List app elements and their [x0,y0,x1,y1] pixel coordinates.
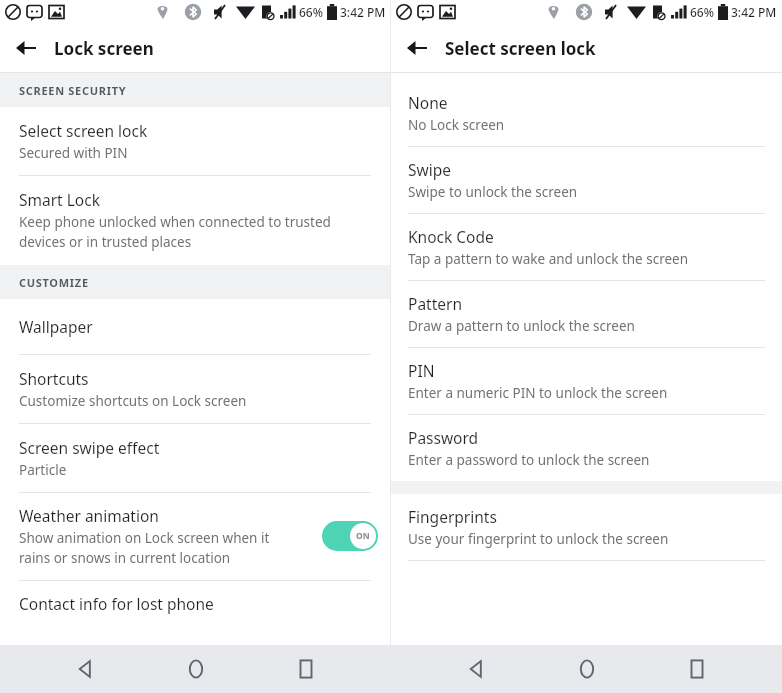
staticText: Select screen lock [19,120,148,141]
button[interactable]: Select screen lock [0,107,390,175]
button[interactable]: Wallpaper [0,299,390,354]
staticText: Password [408,427,479,448]
staticText: Show animation on Lock screen when it ra… [19,529,270,567]
button[interactable]: Contact info for lost phone [0,581,390,631]
button[interactable]: Pattern [391,281,782,347]
staticText: Use your fingerprint to unlock the scree… [408,530,669,548]
staticText: Screen swipe effect [19,437,160,458]
button[interactable]: Password [391,415,782,481]
button[interactable]: Back [8,30,44,66]
button[interactable]: Weather animation [0,493,390,580]
staticText: 3:42 PM [731,4,777,20]
button[interactable]: Back [450,647,502,691]
button[interactable]: Knock Code [391,214,782,280]
staticText: SCREEN SECURITY [19,83,127,98]
button[interactable]: Swipe [391,147,782,213]
button[interactable]: Home [170,647,222,691]
staticText: Draw a pattern to unlock the screen [408,317,635,335]
button[interactable]: Shortcuts [0,355,390,423]
button[interactable]: Fingerprints [391,494,782,560]
button[interactable]: None [391,81,782,146]
staticText: Swipe to unlock the screen [408,183,578,201]
staticText: Fingerprints [408,506,497,527]
staticText: Smart Lock [19,189,100,210]
staticText: Enter a numeric PIN to unlock the screen [408,384,668,402]
staticText: PIN [408,360,435,381]
staticText: No Lock screen [408,116,505,134]
button[interactable]: Home [561,647,613,691]
staticText: 66% [299,4,323,20]
staticText: 66% [690,4,714,20]
staticText: Swipe [408,159,451,180]
staticText: 3:42 PM [340,4,386,20]
staticText: Pattern [408,293,462,314]
staticText: Particle [19,461,67,479]
button[interactable]: Weather animation on [322,521,378,551]
staticText: Keep phone unlocked when connected to tr… [19,213,331,251]
button[interactable]: PIN [391,348,782,414]
button[interactable]: Back [59,647,111,691]
staticText: Customize shortcuts on Lock screen [19,392,247,410]
staticText: Weather animation [19,505,159,526]
staticText: Enter a password to unlock the screen [408,451,650,469]
staticText: Shortcuts [19,368,89,389]
staticText: ON [356,530,370,542]
staticText: None [408,92,448,113]
staticText: Contact info for lost phone [19,593,214,614]
staticText: Wallpaper [19,316,93,337]
staticText: Lock screen [54,37,154,60]
button[interactable]: Back [399,30,435,66]
button[interactable]: Recents [280,647,332,691]
staticText: Tap a pattern to wake and unlock the scr… [408,250,689,268]
staticText: CUSTOMIZE [19,275,89,290]
staticText: Select screen lock [445,37,596,60]
staticText: Knock Code [408,226,494,247]
button[interactable]: Recents [671,647,723,691]
button[interactable]: Smart Lock [0,176,390,265]
staticText: Secured with PIN [19,144,128,162]
button[interactable]: Screen swipe effect [0,424,390,492]
